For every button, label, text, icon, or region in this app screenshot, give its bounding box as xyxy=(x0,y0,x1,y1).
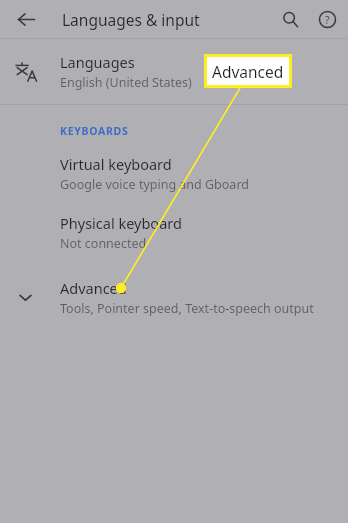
staticText: Advanced xyxy=(60,278,127,298)
button[interactable]: Languages xyxy=(0,39,348,104)
button[interactable]: Help xyxy=(310,2,344,36)
staticText: Not connected xyxy=(60,235,147,252)
button[interactable]: Physical keyboard xyxy=(0,211,348,253)
staticText: Physical keyboard xyxy=(60,213,182,233)
button[interactable]: Back xyxy=(8,1,44,37)
staticText: Languages & input xyxy=(62,9,200,30)
button[interactable]: Search xyxy=(273,2,307,36)
staticText: Languages xyxy=(60,52,135,72)
staticText: Tools, Pointer speed, Text-to-speech out… xyxy=(60,300,314,317)
staticText: ? xyxy=(325,13,330,27)
staticText: Advanced xyxy=(212,61,284,82)
staticText: Google voice typing and Gboard xyxy=(60,176,249,193)
staticText: Virtual keyboard xyxy=(60,154,172,174)
button[interactable]: Advanced xyxy=(0,276,348,318)
staticText: KEYBOARDS xyxy=(60,124,129,138)
staticText: English (United States) xyxy=(60,74,192,91)
button[interactable]: Virtual keyboard xyxy=(0,152,348,194)
